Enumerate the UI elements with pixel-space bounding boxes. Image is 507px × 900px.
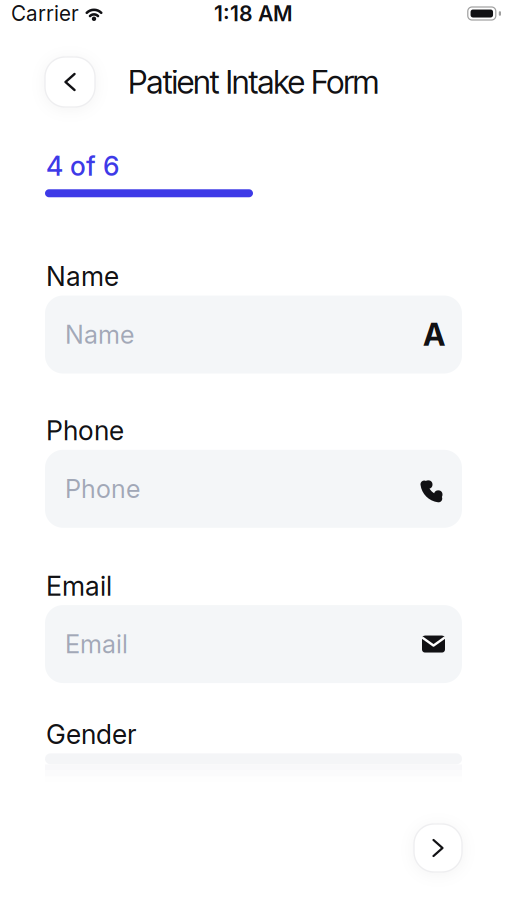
staticText: 1:18 AM: [214, 1, 293, 26]
button[interactable]: Back: [45, 57, 95, 107]
staticText: Phone: [46, 414, 124, 447]
staticText: Email: [46, 570, 112, 602]
staticText: 4 of 6: [46, 150, 119, 182]
button[interactable]: Email: [45, 605, 462, 683]
staticText: Gender: [46, 718, 137, 750]
staticText: Name: [65, 319, 134, 350]
staticText: Carrier: [11, 1, 79, 26]
staticText: Phone: [65, 473, 140, 504]
staticText: Email: [65, 629, 128, 659]
button[interactable]: Next: [414, 824, 462, 872]
staticText: Patient Intake Form: [128, 63, 379, 101]
staticText: Name: [46, 260, 119, 293]
button[interactable]: Phone: [45, 450, 462, 528]
staticText: A: [423, 316, 445, 353]
button[interactable]: Name: [45, 295, 462, 373]
